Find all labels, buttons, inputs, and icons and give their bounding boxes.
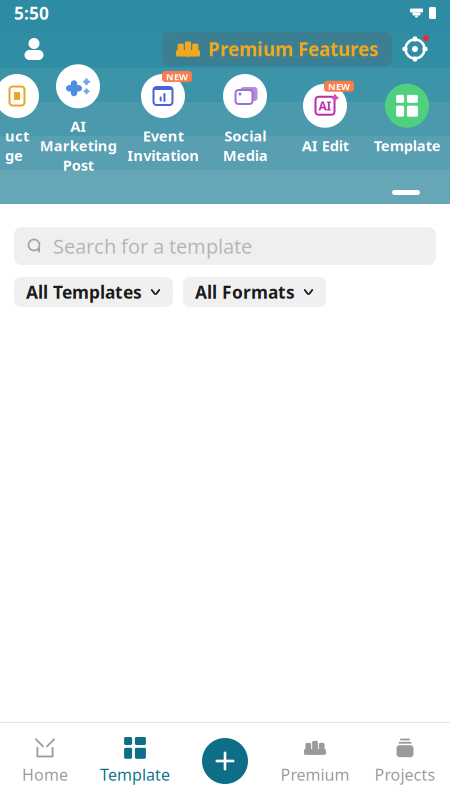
staticText: Event Invitation: [127, 126, 199, 165]
staticText: Template: [373, 136, 440, 155]
staticText: uct ge: [5, 126, 29, 165]
button[interactable]: Settings: [392, 27, 438, 71]
button[interactable]: Account: [12, 27, 56, 71]
button[interactable]: Premium: [270, 727, 360, 795]
button[interactable]: NEW: [122, 71, 204, 165]
button[interactable]: Template: [364, 81, 450, 155]
staticText: Social Media: [222, 126, 267, 165]
button[interactable]: Social Media: [204, 71, 286, 165]
button[interactable]: All Formats: [183, 277, 326, 307]
button[interactable]: Home: [0, 727, 90, 795]
staticText: AI: [318, 98, 331, 114]
staticText: NEW: [328, 80, 350, 92]
button[interactable]: Projects: [360, 727, 450, 795]
staticText: AI Edit: [301, 136, 348, 155]
staticText: Search for a template: [53, 233, 252, 259]
button[interactable]: Premium Features: [162, 32, 392, 66]
button[interactable]: Create: [180, 727, 270, 795]
staticText: Template: [100, 764, 170, 785]
button[interactable]: Template: [90, 727, 180, 795]
staticText: NEW: [166, 70, 188, 83]
staticText: All Formats: [195, 280, 295, 303]
staticText: Projects: [374, 764, 435, 785]
button[interactable]: All Templates: [14, 277, 173, 307]
button[interactable]: AI: [286, 81, 364, 155]
staticText: Home: [22, 764, 68, 785]
button[interactable]: Search for a template: [14, 227, 436, 265]
staticText: AI Marketing Post: [39, 116, 116, 175]
staticText: Premium: [280, 764, 349, 785]
button[interactable]: AI Marketing Post: [34, 61, 122, 175]
staticText: All Templates: [26, 280, 142, 303]
staticText: Premium Features: [208, 37, 378, 61]
staticText: 5:50: [14, 1, 49, 24]
button[interactable]: uct ge: [0, 71, 34, 165]
